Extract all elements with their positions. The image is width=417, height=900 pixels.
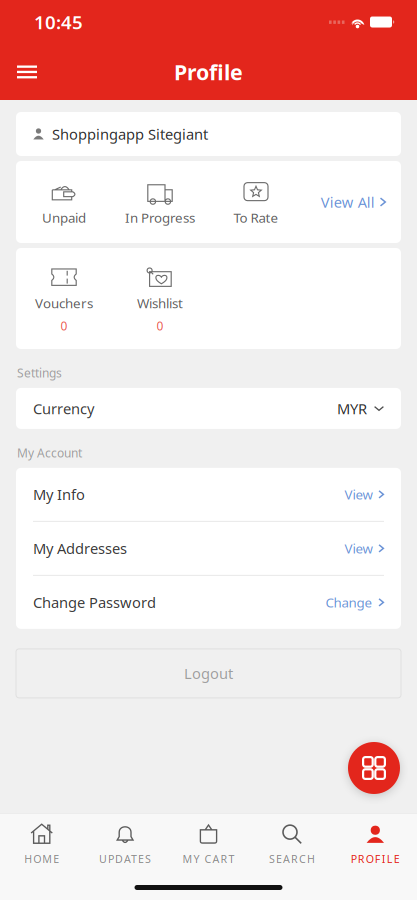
staticText: Logout [184,664,233,683]
button[interactable]: Logout [0,629,417,698]
staticText: Settings [17,365,62,381]
staticText: 0 [156,318,163,334]
staticText: My Addresses [33,539,127,558]
staticText: My Info [33,485,85,504]
button[interactable]: Change Password [16,576,401,629]
button[interactable]: To Rate [208,178,304,226]
staticText: Change Password [33,593,156,612]
button[interactable]: UPDATES [83,814,167,875]
staticText: HOME [24,852,59,866]
staticText: 0 [60,318,67,334]
button[interactable]: My Addresses [16,522,401,575]
staticText: View [344,539,372,557]
staticText: Unpaid [42,209,86,226]
staticText: MY CART [182,852,234,866]
button[interactable]: Menu [3,51,51,92]
staticText: SEARCH [269,852,315,866]
staticText: Shoppingapp Sitegiant [52,124,208,144]
staticText: View All [321,192,375,212]
staticText: View [344,485,372,503]
staticText: Profile [174,58,243,86]
staticText: MYR [337,399,367,418]
staticText: Wishlist [137,294,183,312]
button[interactable]: Wishlist [112,263,208,334]
staticText: Currency [33,399,94,418]
button[interactable]: PROFILE [334,814,417,875]
staticText: To Rate [233,209,278,226]
staticText: 10:45 [34,10,83,34]
button[interactable]: Currency [0,388,417,429]
staticText: PROFILE [351,852,400,866]
button[interactable]: SEARCH [250,814,334,875]
staticText: Change [325,593,372,611]
button[interactable]: Categories [348,742,400,794]
button[interactable]: In Progress [112,178,208,226]
staticText: My Account [17,445,82,461]
button[interactable]: My Info [16,468,401,521]
button[interactable]: Unpaid [16,178,112,226]
staticText: In Progress [125,209,195,226]
staticText: UPDATES [99,852,151,866]
button[interactable]: MY CART [167,814,250,875]
button[interactable]: View All [321,172,401,232]
staticText: Vouchers [35,294,93,312]
button[interactable]: HOME [0,814,83,875]
button[interactable]: Vouchers [16,263,112,334]
